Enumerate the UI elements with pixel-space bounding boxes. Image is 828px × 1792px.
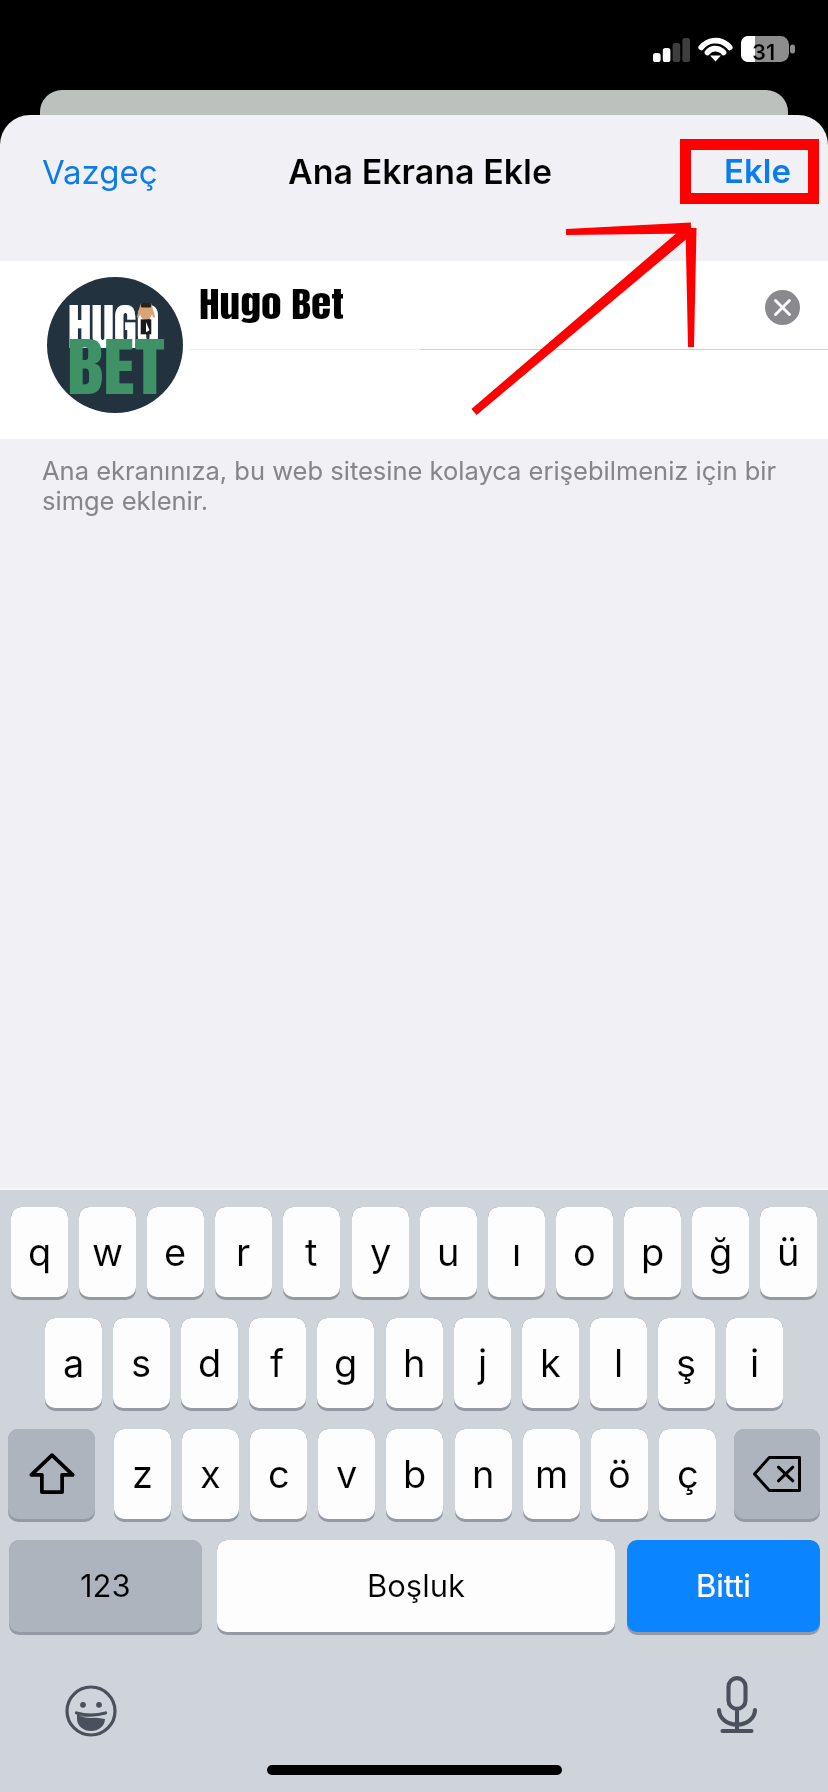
staticText: Bitti <box>696 1567 751 1605</box>
staticText: n <box>472 1451 495 1497</box>
button[interactable]: Boşluk <box>217 1540 615 1635</box>
button[interactable]: Sil <box>734 1429 820 1522</box>
staticText: ı <box>512 1229 522 1275</box>
button[interactable]: ö <box>591 1429 648 1522</box>
staticText: c <box>268 1451 290 1497</box>
button[interactable]: Temizle <box>765 290 800 325</box>
button[interactable]: w <box>79 1207 136 1300</box>
button[interactable]: u <box>420 1207 477 1300</box>
button[interactable]: ı <box>488 1207 545 1300</box>
staticText: i <box>750 1340 760 1386</box>
button[interactable]: Bitti <box>627 1540 820 1635</box>
staticText: BET <box>67 320 165 413</box>
button[interactable]: l <box>590 1318 647 1411</box>
staticText: f <box>270 1340 285 1386</box>
staticText: b <box>403 1451 427 1497</box>
button[interactable]: ş <box>658 1318 715 1411</box>
staticText: q <box>28 1229 52 1275</box>
staticText: u <box>437 1229 460 1275</box>
button[interactable]: Dikte <box>712 1677 762 1735</box>
staticText: l <box>614 1340 624 1386</box>
button[interactable]: a <box>45 1318 102 1411</box>
staticText: ü <box>777 1229 800 1275</box>
staticText: HUGO <box>68 289 160 364</box>
staticText: ş <box>676 1340 697 1386</box>
button[interactable]: ç <box>659 1429 716 1522</box>
button[interactable]: m <box>523 1429 580 1522</box>
button[interactable]: r <box>215 1207 272 1300</box>
button[interactable]: e <box>147 1207 204 1300</box>
staticText: x <box>200 1451 221 1497</box>
button[interactable]: s <box>113 1318 170 1411</box>
staticText: s <box>131 1340 152 1386</box>
staticText: o <box>573 1229 596 1275</box>
staticText: d <box>198 1340 222 1386</box>
staticText: e <box>164 1229 187 1275</box>
staticText: y <box>370 1229 392 1275</box>
staticText: g <box>334 1340 358 1386</box>
button[interactable]: k <box>522 1318 579 1411</box>
button[interactable]: j <box>454 1318 511 1411</box>
button[interactable]: i <box>726 1318 783 1411</box>
staticText: Ana ekranınıza, bu web sitesine kolayca … <box>42 455 782 516</box>
staticText: a <box>63 1340 85 1386</box>
staticText: ğ <box>709 1229 733 1275</box>
staticText: Boşluk <box>367 1567 466 1605</box>
button[interactable]: Emoji <box>65 1685 117 1737</box>
staticText: j <box>478 1340 488 1386</box>
staticText: h <box>403 1340 426 1386</box>
button[interactable]: 123 <box>9 1540 202 1635</box>
staticText: z <box>132 1451 153 1497</box>
staticText: r <box>236 1229 251 1275</box>
button[interactable]: Vazgeç <box>24 142 176 202</box>
button[interactable]: ü <box>760 1207 817 1300</box>
button[interactable]: x <box>182 1429 239 1522</box>
staticText: Hugo Bet <box>199 278 344 331</box>
staticText: v <box>336 1451 358 1497</box>
button[interactable]: z <box>114 1429 171 1522</box>
staticText: Vazgeç <box>42 152 158 192</box>
button[interactable]: g <box>317 1318 374 1411</box>
staticText: p <box>641 1229 665 1275</box>
button[interactable]: c <box>250 1429 307 1522</box>
staticText: m <box>535 1451 569 1497</box>
button[interactable]: y <box>352 1207 409 1300</box>
button[interactable]: n <box>455 1429 512 1522</box>
staticText: w <box>92 1229 124 1275</box>
button[interactable]: b <box>386 1429 443 1522</box>
button[interactable]: d <box>181 1318 238 1411</box>
button[interactable]: t <box>283 1207 340 1300</box>
button[interactable]: q <box>11 1207 68 1300</box>
staticText: t <box>305 1229 318 1275</box>
button[interactable]: f <box>249 1318 306 1411</box>
staticText: ç <box>677 1451 699 1497</box>
button[interactable]: p <box>624 1207 681 1300</box>
staticText: Ana Ekrana Ekle <box>288 151 553 192</box>
button[interactable]: o <box>556 1207 613 1300</box>
staticText: k <box>540 1340 561 1386</box>
staticText: Ekle <box>724 151 791 191</box>
button[interactable]: Shift <box>8 1429 95 1522</box>
button[interactable]: h <box>386 1318 443 1411</box>
button[interactable]: ğ <box>692 1207 749 1300</box>
staticText: 31 <box>752 39 776 65</box>
staticText: 123 <box>80 1567 131 1605</box>
button[interactable]: v <box>318 1429 375 1522</box>
staticText: ö <box>608 1451 631 1497</box>
button[interactable]: Ekle <box>706 141 809 201</box>
